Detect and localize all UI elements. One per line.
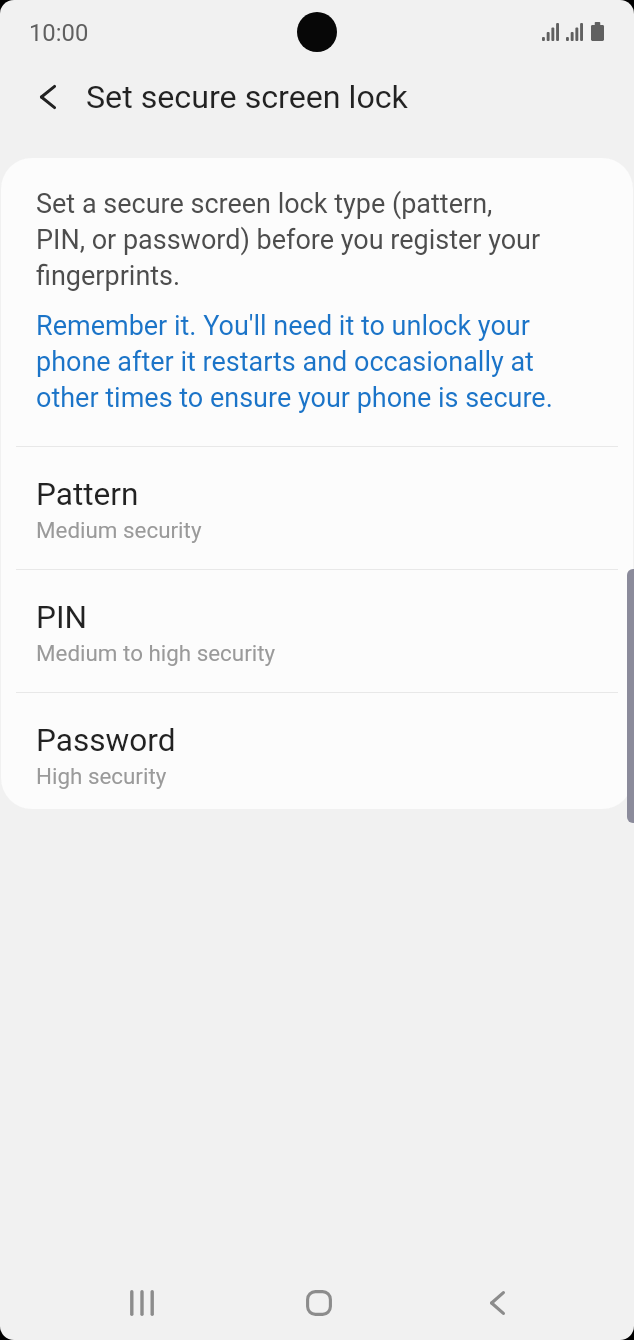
staticText: Set secure screen lock [86, 78, 408, 116]
button[interactable]: PIN [1, 570, 633, 692]
button[interactable]: Pattern [1, 447, 633, 569]
staticText: Remember it. You'll need it to unlock yo… [36, 306, 553, 414]
staticText: Medium security [36, 517, 202, 543]
staticText: High security [36, 763, 167, 789]
staticText: 10:00 [29, 19, 89, 47]
button[interactable]: Back [452, 1266, 542, 1340]
staticText: Pattern [36, 476, 139, 513]
button[interactable]: Home [274, 1266, 364, 1340]
button[interactable]: Navigate up [21, 70, 75, 124]
staticText: Medium to high security [36, 640, 276, 666]
staticText: Password [36, 722, 176, 759]
staticText: Set a secure screen lock type (pattern, … [36, 184, 541, 292]
button[interactable]: Recent apps [97, 1266, 187, 1340]
staticText: PIN [36, 599, 88, 636]
button[interactable]: Password [1, 693, 633, 809]
